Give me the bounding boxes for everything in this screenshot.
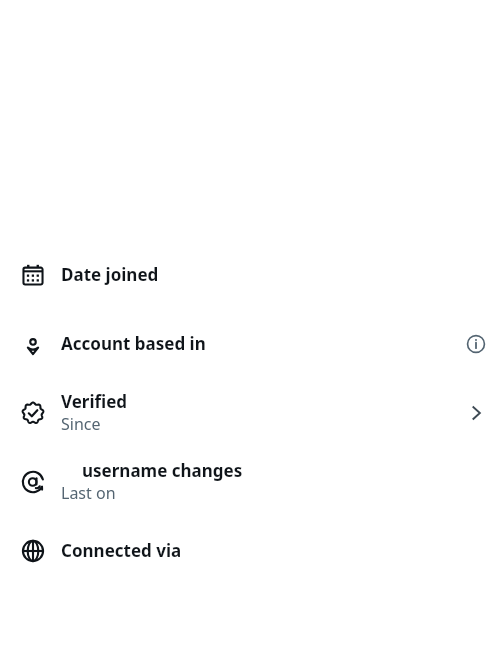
button[interactable]: Date joined (0, 240, 500, 309)
button[interactable]: More information (452, 320, 500, 368)
staticText: Verified (61, 390, 128, 413)
staticText: Connected via (61, 539, 182, 562)
staticText: Since (61, 413, 101, 435)
button[interactable]: Connected via (0, 516, 500, 585)
button[interactable]: Verified details (452, 389, 500, 437)
staticText: Last on (61, 482, 116, 504)
button[interactable]: username changes (0, 447, 500, 516)
button[interactable]: Account based in (0, 309, 500, 378)
staticText: Date joined (61, 263, 159, 286)
staticText: Account based in (61, 332, 206, 355)
staticText: username changes (82, 459, 243, 482)
button[interactable]: Verified (0, 378, 500, 447)
